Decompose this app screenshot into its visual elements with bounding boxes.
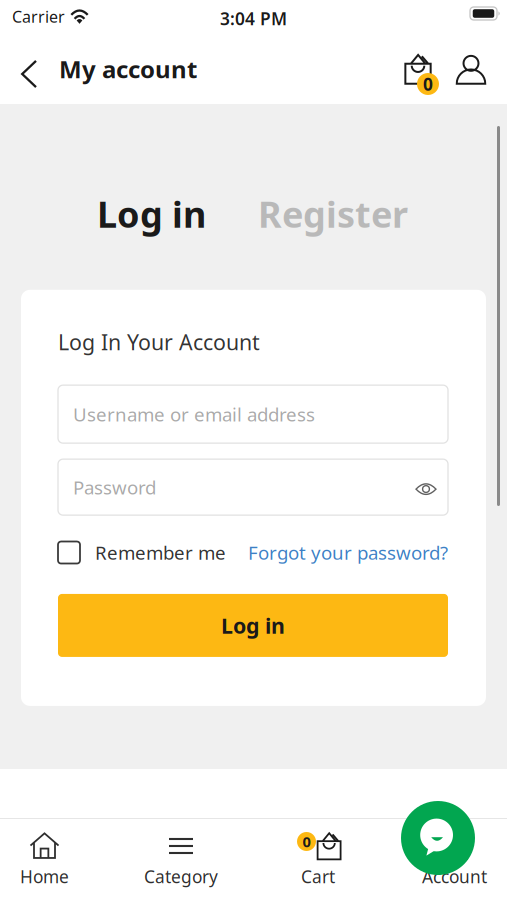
button[interactable]: Cart bbox=[397, 45, 441, 93]
button[interactable]: Forgot your password? bbox=[248, 540, 448, 565]
button[interactable]: Remember me bbox=[58, 541, 226, 563]
staticText: 3:04 PM bbox=[220, 7, 287, 30]
staticText: Log in bbox=[97, 190, 206, 238]
staticText: My account bbox=[59, 53, 197, 85]
button[interactable]: Account bbox=[394, 819, 507, 900]
staticText: 0 bbox=[302, 832, 310, 851]
staticText: 0 bbox=[423, 72, 433, 95]
staticText: Password bbox=[73, 475, 156, 499]
staticText: Cart bbox=[301, 865, 335, 888]
staticText: Remember me bbox=[95, 540, 226, 565]
button[interactable]: Log in bbox=[58, 594, 448, 657]
staticText: Username or email address bbox=[73, 402, 315, 426]
button[interactable]: Home bbox=[0, 819, 104, 900]
staticText: Category bbox=[144, 865, 218, 888]
button[interactable]: Log in bbox=[97, 190, 206, 238]
staticText: Register bbox=[258, 190, 408, 238]
button[interactable]: Category bbox=[121, 819, 241, 900]
staticText: Account bbox=[422, 865, 487, 888]
button[interactable]: Register bbox=[206, 190, 408, 238]
staticText: Home bbox=[20, 865, 69, 888]
staticText: Carrier bbox=[12, 6, 65, 27]
staticText: Log In Your Account bbox=[58, 328, 260, 356]
staticText: Log in bbox=[221, 611, 285, 640]
button[interactable]: Back bbox=[8, 45, 50, 93]
button[interactable]: Account bbox=[449, 45, 493, 93]
button[interactable]: Chat bbox=[401, 801, 475, 875]
staticText: Forgot your password? bbox=[248, 540, 448, 565]
button[interactable]: 0 bbox=[258, 819, 378, 900]
